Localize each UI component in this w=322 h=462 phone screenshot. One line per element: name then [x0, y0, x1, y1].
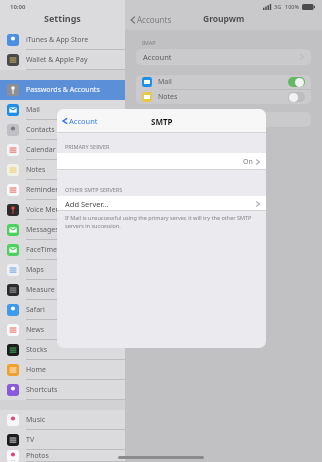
staticText: PRIMARY SERVER: [65, 143, 110, 150]
staticText: Passwords & Accounts: [26, 85, 100, 95]
button[interactable]: Mail on: [288, 77, 305, 87]
staticText: Accounts: [137, 14, 172, 25]
button[interactable]: Account: [62, 116, 98, 126]
staticText: Settings: [44, 12, 81, 24]
button[interactable]: Accounts: [130, 14, 172, 25]
button[interactable]: Mail: [136, 75, 311, 89]
button[interactable]: TV: [0, 430, 125, 450]
button[interactable]: Notes off: [288, 92, 305, 102]
staticText: Groupwm: [203, 13, 245, 25]
staticText: If Mail is unsuccessful using the primar…: [65, 214, 258, 230]
staticText: News: [26, 325, 44, 335]
staticText: Stocks: [26, 345, 48, 355]
button[interactable]: Home: [0, 360, 125, 380]
button[interactable]: On: [57, 153, 266, 170]
button[interactable]: Stocks: [0, 340, 125, 360]
button[interactable]: Photos: [0, 450, 125, 462]
staticText: Photos: [26, 451, 49, 461]
staticText: Music: [26, 415, 46, 425]
button[interactable]: Voice Memos: [0, 200, 125, 220]
staticText: Shortcuts: [26, 385, 58, 395]
staticText: Account: [69, 116, 98, 126]
staticText: 3G: [274, 3, 282, 10]
staticText: Mail: [158, 77, 172, 87]
staticText: Notes: [158, 92, 178, 102]
staticText: IMAP: [142, 39, 156, 46]
staticText: iTunes & App Store: [26, 35, 89, 45]
staticText: 10:00: [10, 3, 26, 11]
button[interactable]: Music: [0, 410, 125, 430]
staticText: Mail: [26, 105, 40, 115]
staticText: 100%: [285, 3, 300, 10]
staticText: SMTP: [151, 116, 173, 127]
staticText: Calendar: [26, 145, 56, 155]
button[interactable]: Safari: [0, 300, 125, 320]
staticText: Wallet & Apple Pay: [26, 55, 88, 65]
button[interactable]: Mail: [0, 100, 125, 120]
staticText: Safari: [26, 305, 45, 315]
staticText: Measure: [26, 285, 55, 295]
button[interactable]: Notes: [0, 160, 125, 180]
staticText: FaceTime: [26, 245, 58, 255]
button[interactable]: News: [0, 320, 125, 340]
staticText: Account: [143, 52, 172, 62]
staticText: TV: [26, 435, 35, 445]
button[interactable]: Measure: [0, 280, 125, 300]
staticText: On: [243, 157, 253, 167]
staticText: Reminders: [26, 185, 62, 195]
button[interactable]: Add Server...: [57, 196, 266, 211]
staticText: Contacts: [26, 125, 55, 135]
button[interactable]: Shortcuts: [0, 380, 125, 400]
button[interactable]: Maps: [0, 260, 125, 280]
staticText: Messages: [26, 225, 59, 235]
staticText: Maps: [26, 265, 44, 275]
button[interactable]: iTunes & App Store: [0, 30, 125, 50]
staticText: Voice Memos: [26, 205, 70, 215]
staticText: Notes: [26, 165, 46, 175]
button[interactable]: Messages: [0, 220, 125, 240]
button[interactable]: Account: [136, 49, 311, 65]
button[interactable]: Calendar: [0, 140, 125, 160]
staticText: OTHER SMTP SERVERS: [65, 186, 123, 193]
button[interactable]: Notes: [136, 90, 311, 104]
staticText: Home: [26, 365, 46, 375]
button[interactable]: Reminders: [0, 180, 125, 200]
button[interactable]: Passwords & Accounts: [0, 80, 125, 100]
staticText: Add Server...: [65, 199, 109, 209]
button[interactable]: Contacts: [0, 120, 125, 140]
button[interactable]: Wallet & Apple Pay: [0, 50, 125, 70]
button[interactable]: [136, 112, 311, 127]
button[interactable]: FaceTime: [0, 240, 125, 260]
